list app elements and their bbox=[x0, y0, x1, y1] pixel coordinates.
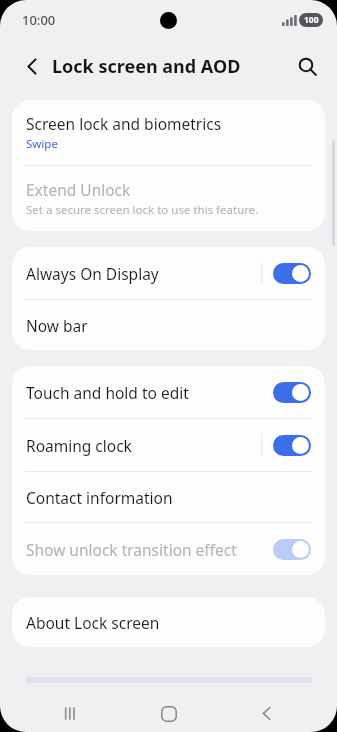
button[interactable]: Toggle bbox=[273, 382, 311, 403]
button[interactable]: Extend Unlock bbox=[12, 166, 325, 231]
button[interactable]: Screen lock and biometrics bbox=[12, 100, 325, 165]
button[interactable]: Contact information bbox=[12, 472, 325, 522]
button[interactable]: Roaming clock bbox=[12, 419, 325, 471]
button[interactable]: About Lock screen bbox=[12, 597, 325, 647]
staticText: Roaming clock bbox=[26, 435, 261, 456]
button[interactable]: Back bbox=[14, 48, 50, 84]
button[interactable]: Toggle bbox=[273, 539, 311, 560]
staticText: 100 bbox=[304, 14, 319, 26]
button[interactable]: Recent apps bbox=[44, 695, 98, 732]
button[interactable]: Show unlock transition effect bbox=[12, 523, 325, 575]
staticText: Show unlock transition effect bbox=[26, 539, 273, 560]
staticText: Swipe bbox=[26, 136, 58, 152]
staticText: Now bar bbox=[26, 315, 88, 336]
staticText: Set a secure screen lock to use this fea… bbox=[26, 202, 259, 218]
button[interactable]: Touch and hold to edit bbox=[12, 366, 325, 418]
staticText: Lock screen and AOD bbox=[52, 54, 241, 79]
staticText: 10:00 bbox=[22, 11, 56, 29]
staticText: Extend Unlock bbox=[26, 179, 131, 200]
staticText: Screen lock and biometrics bbox=[26, 113, 222, 134]
button[interactable]: Toggle bbox=[273, 435, 311, 456]
staticText: Touch and hold to edit bbox=[26, 382, 273, 403]
staticText: Always On Display bbox=[26, 263, 261, 284]
staticText: About Lock screen bbox=[26, 612, 160, 633]
staticText: Contact information bbox=[26, 487, 173, 508]
button[interactable]: Home bbox=[142, 695, 196, 732]
button[interactable]: Search bbox=[289, 48, 325, 84]
button[interactable]: Back bbox=[239, 695, 293, 732]
button[interactable]: Now bar bbox=[12, 300, 325, 350]
button[interactable]: Always On Display bbox=[12, 247, 325, 299]
button[interactable]: Toggle bbox=[273, 263, 311, 284]
